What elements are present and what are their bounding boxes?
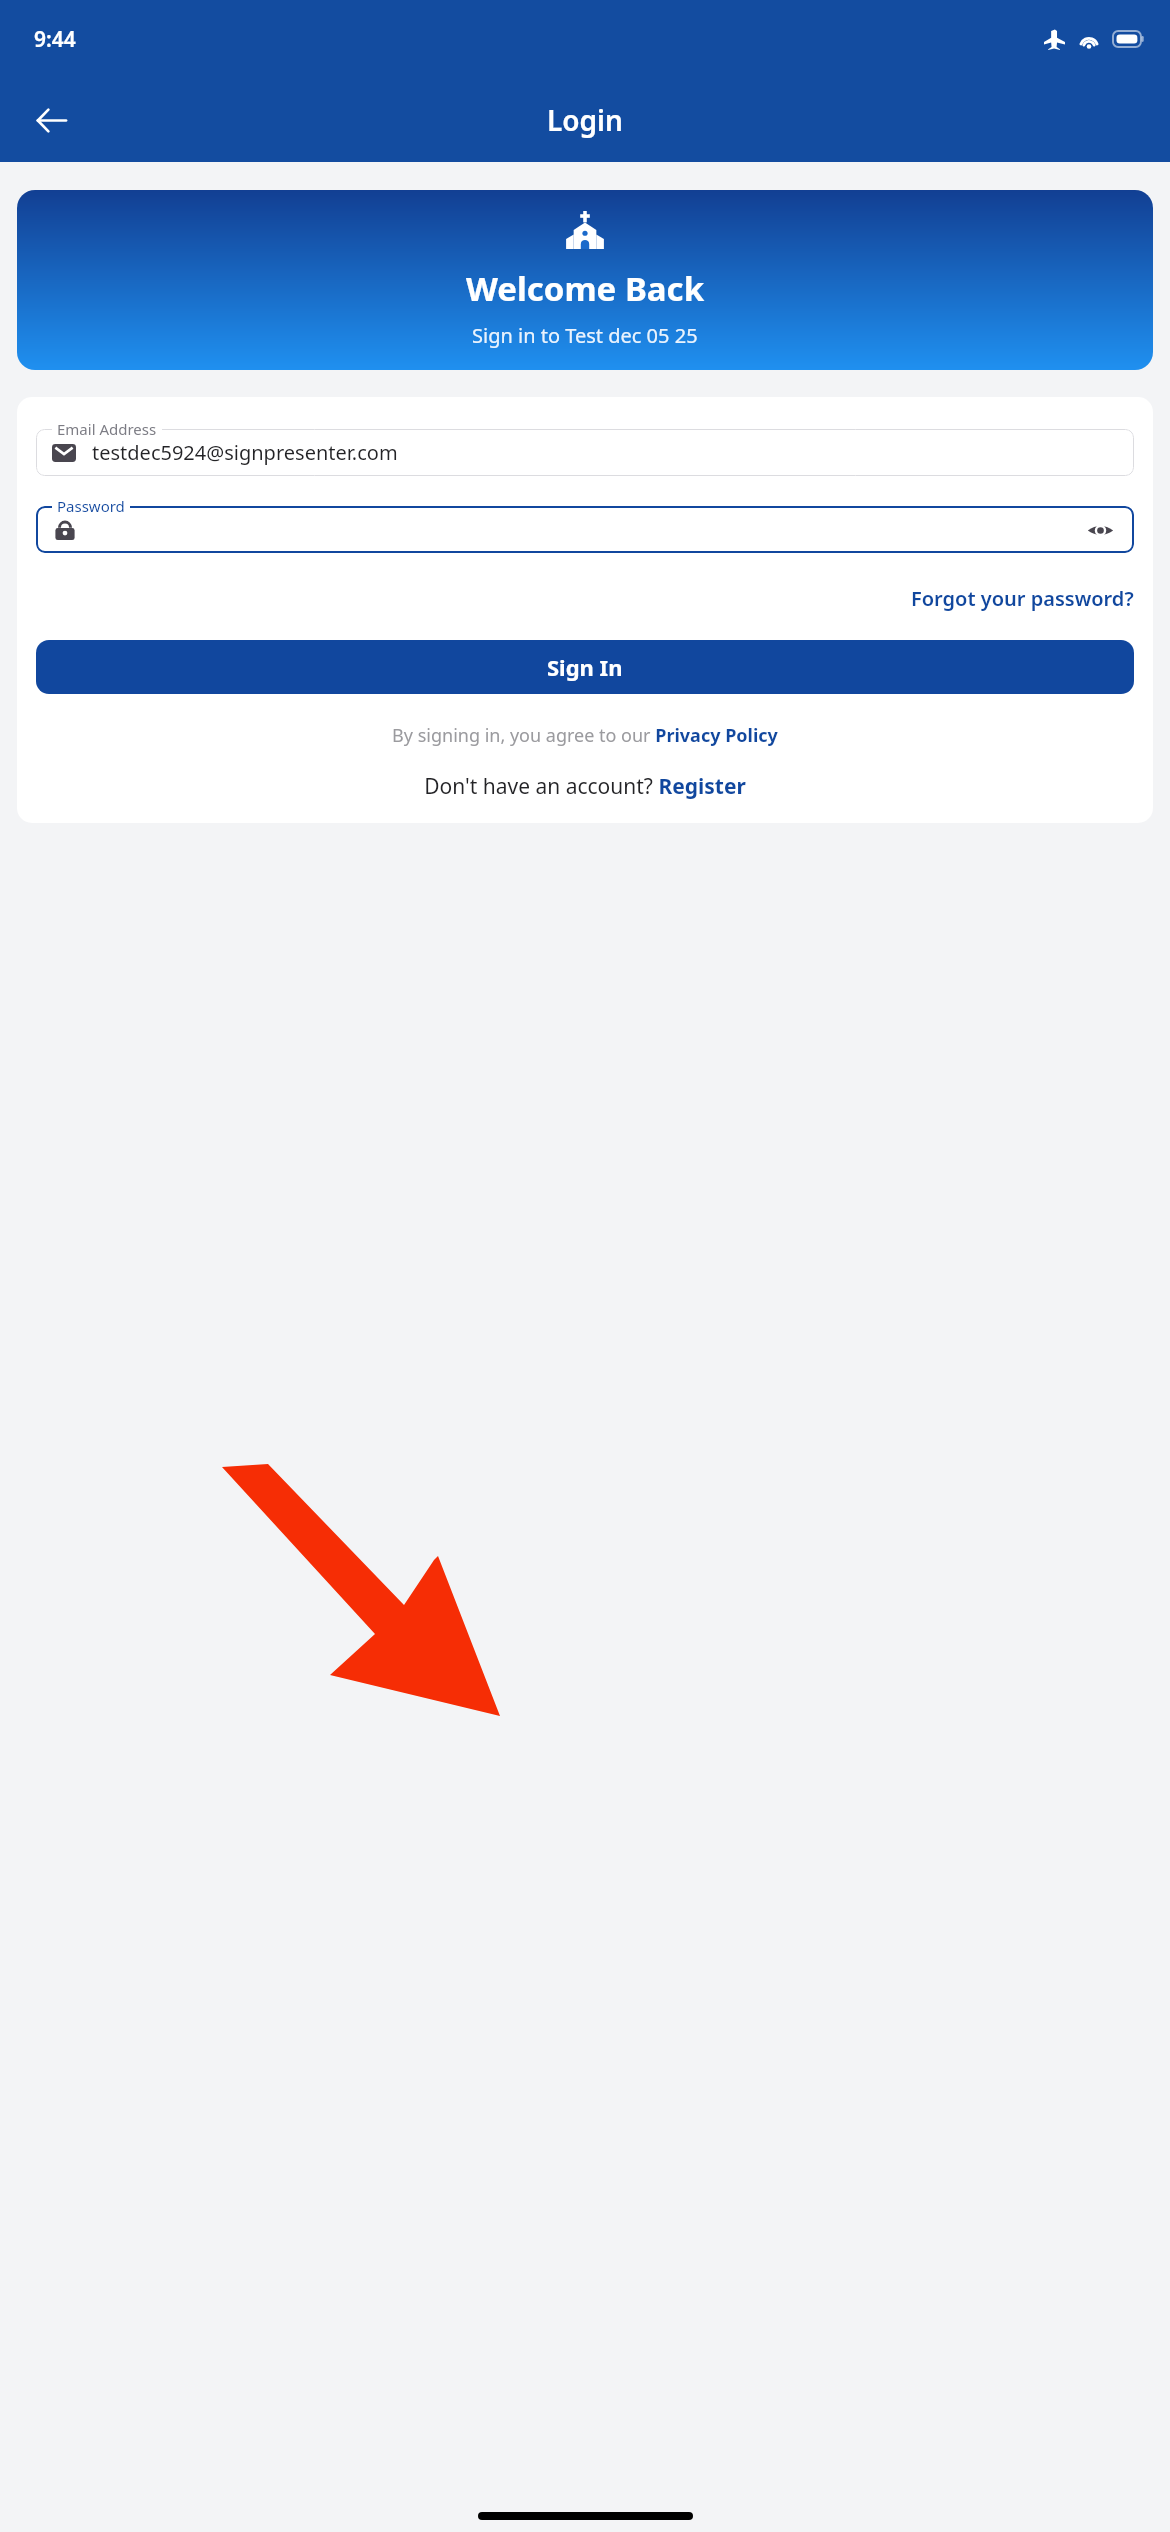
button[interactable]: Back	[22, 91, 80, 149]
staticText: 9:44	[34, 25, 76, 54]
staticText: Sign in to Test dec 05 25	[472, 322, 698, 349]
button[interactable]: By signing in, you agree to our Privacy …	[392, 723, 778, 748]
staticText: Email Address	[57, 419, 157, 439]
button[interactable]: Show password	[1083, 513, 1117, 547]
staticText: Login	[547, 101, 623, 139]
staticText: Forgot your password?	[911, 585, 1134, 612]
staticText: Welcome Back	[466, 266, 705, 311]
staticText: testdec5924@signpresenter.com	[92, 439, 398, 466]
button[interactable]: Email Address	[36, 419, 1134, 476]
staticText: Password	[57, 496, 125, 516]
button[interactable]: Forgot your password?	[911, 581, 1134, 616]
button[interactable]: Don't have an account? Register	[424, 772, 746, 801]
button[interactable]: Sign In	[36, 640, 1134, 694]
staticText: Sign In	[547, 652, 623, 682]
button[interactable]: Password	[36, 496, 1134, 553]
